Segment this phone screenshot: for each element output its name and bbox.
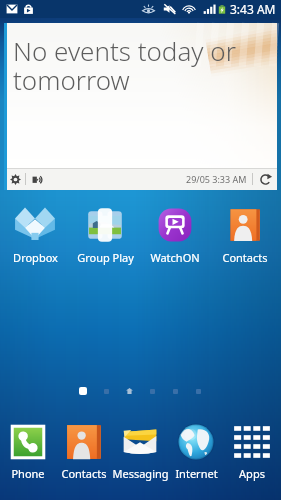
button[interactable]: Settings	[8, 172, 22, 186]
staticText: Contacts	[61, 466, 107, 481]
button[interactable]: Page 4	[148, 387, 156, 395]
staticText: Apps	[239, 466, 265, 481]
button[interactable]: Internet	[168, 423, 224, 481]
staticText: 3:43 AM	[230, 1, 276, 17]
staticText: 29/05 3:33 AM	[186, 173, 247, 185]
button[interactable]: Contacts	[210, 204, 280, 265]
staticText: Group Play	[77, 250, 134, 265]
button[interactable]: Page 6	[194, 387, 202, 395]
button[interactable]: WatchON	[140, 204, 210, 265]
button[interactable]: Dropbox	[0, 204, 70, 265]
button[interactable]: Group Play	[70, 204, 140, 265]
button[interactable]: Read aloud	[30, 172, 44, 186]
button[interactable]: Page 1	[79, 387, 87, 395]
button[interactable]: Page 5	[171, 387, 179, 395]
button[interactable]: No events today or tomorrow	[4, 23, 277, 190]
button[interactable]: Home page	[125, 387, 133, 395]
button[interactable]: Apps	[224, 423, 280, 481]
button[interactable]: Messaging	[112, 423, 168, 481]
staticText: Messaging	[112, 466, 168, 481]
button[interactable]: Contacts	[56, 423, 112, 481]
button[interactable]: Page 2	[102, 387, 110, 395]
button[interactable]: Refresh	[258, 172, 273, 187]
staticText: Internet	[175, 466, 218, 481]
staticText: Phone	[11, 466, 45, 481]
staticText: Dropbox	[13, 250, 58, 265]
staticText: No events today or tomorrow	[13, 33, 236, 97]
staticText: Contacts	[222, 250, 268, 265]
staticText: WatchON	[150, 250, 200, 265]
button[interactable]: Phone	[0, 423, 56, 481]
